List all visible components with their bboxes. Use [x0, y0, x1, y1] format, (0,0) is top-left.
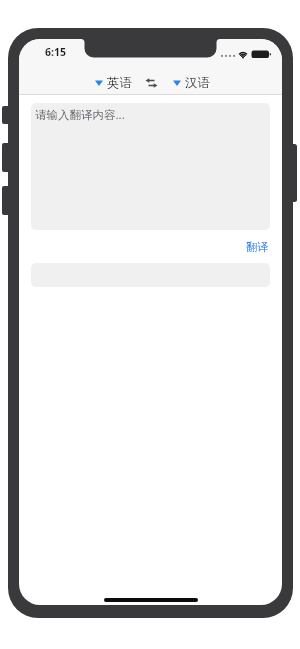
button[interactable]: 汉语 [173, 75, 210, 91]
button[interactable]: 请输入翻译内容... [31, 103, 270, 230]
staticText: 汉语 [185, 75, 210, 91]
staticText: 请输入翻译内容... [35, 107, 125, 123]
button[interactable] [145, 78, 158, 88]
button[interactable]: 英语 [95, 75, 132, 91]
staticText: 6:15 [45, 45, 66, 59]
staticText: 英语 [107, 75, 132, 91]
button[interactable]: 翻译 [246, 240, 268, 254]
staticText: 翻译 [246, 240, 268, 254]
